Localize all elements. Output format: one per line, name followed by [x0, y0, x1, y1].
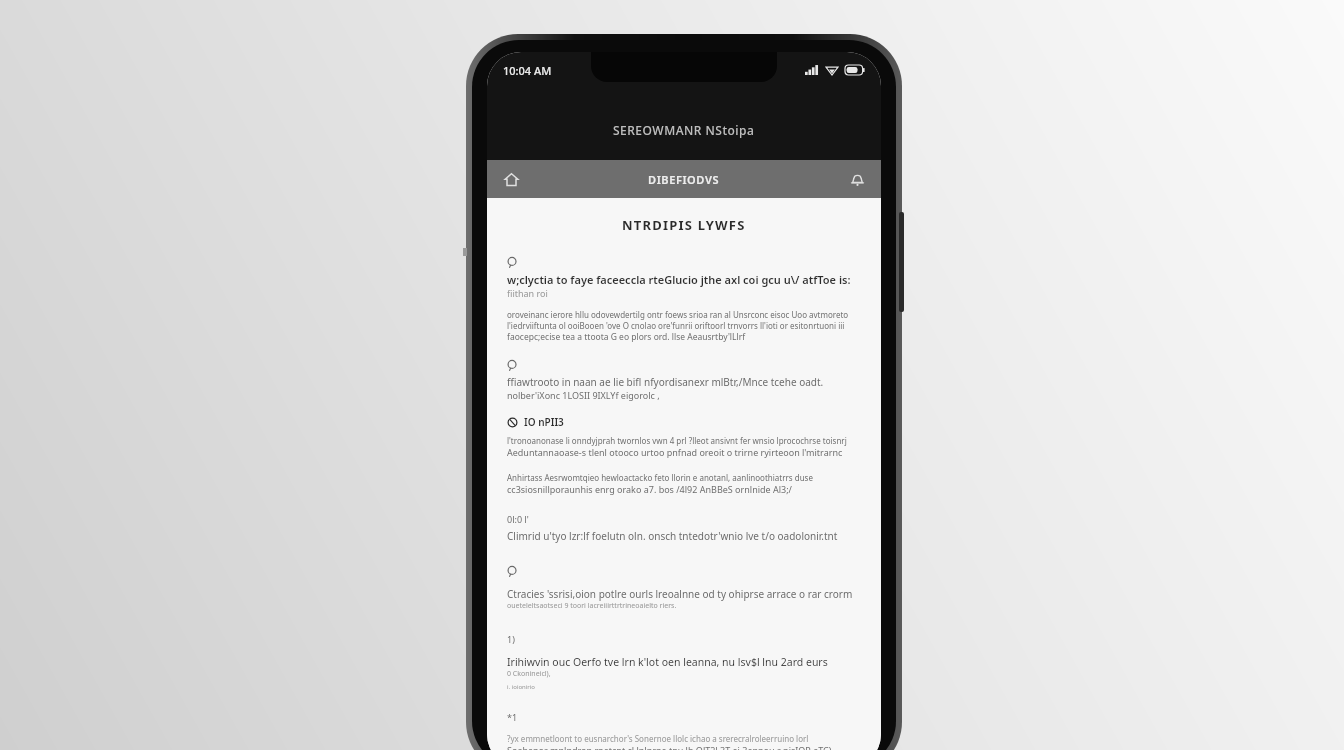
staticText: ffiawtrooto in naan ae lie bifl nfyordis… [507, 375, 861, 389]
staticText: IO nPII3 [524, 415, 564, 429]
staticText: fiithan roi [507, 287, 861, 299]
staticText: 0 Ckonineicl), [507, 669, 861, 679]
staticText: Soabenor mnlndron rnetcnt cl lnlnrne tnu… [507, 744, 861, 750]
staticText: w;clyctia to faye faceeccla rteGlucio jt… [507, 272, 861, 287]
staticText: 1) [507, 633, 861, 645]
staticText: Climrid u'tyo lzr:lf foelutn oln. onsch … [507, 529, 861, 543]
staticText: oroveinanc ierore hllu odovewdertilg ont… [507, 309, 861, 320]
staticText: nolber'iXonc 1LOSII 9IXLYf eigorolc , [507, 389, 861, 401]
staticText: SEREOWMANR NStoipa [613, 122, 755, 138]
staticText: faocepc;ecise tea a ttoota G eo plors or… [507, 331, 861, 343]
staticText: Ctracies 'ssrisi,oion potlre ourls lreoa… [507, 587, 861, 601]
staticText: l'tronoanonase li onndyjprah twornlos vw… [507, 435, 861, 446]
staticText: ?yx emmnetloont to eusnarchor's Sonernoe… [507, 733, 861, 744]
staticText: cc3siosnillporaunhis enrg orako a7. bos … [507, 483, 861, 495]
staticText: DIBEFIODVS [648, 172, 720, 187]
staticText: NTRDIPIS LYWFS [622, 216, 746, 234]
staticText: Irihiwvin ouc Oerfo tve lrn k'lot oen le… [507, 655, 861, 669]
button[interactable]: Notifications [833, 160, 881, 198]
staticText: l'iedrviiftunta ol ooiBooen 'ove O cnola… [507, 320, 861, 331]
button[interactable]: Home [487, 160, 535, 198]
staticText: oueteleltsaotseci 9 toori lacreiiirttrtr… [507, 601, 861, 611]
staticText: Aeduntannaoase-s tlenl otooco urtoo pnfn… [507, 446, 861, 458]
staticText: i. ioionirio [507, 683, 861, 691]
staticText: 0l:0 l' [507, 513, 861, 525]
staticText: *1 [507, 711, 861, 723]
staticText: Anhirtass Aesrwomtqieo hewloactacko feto… [507, 472, 861, 483]
staticText: 10:04 AM [503, 63, 552, 78]
